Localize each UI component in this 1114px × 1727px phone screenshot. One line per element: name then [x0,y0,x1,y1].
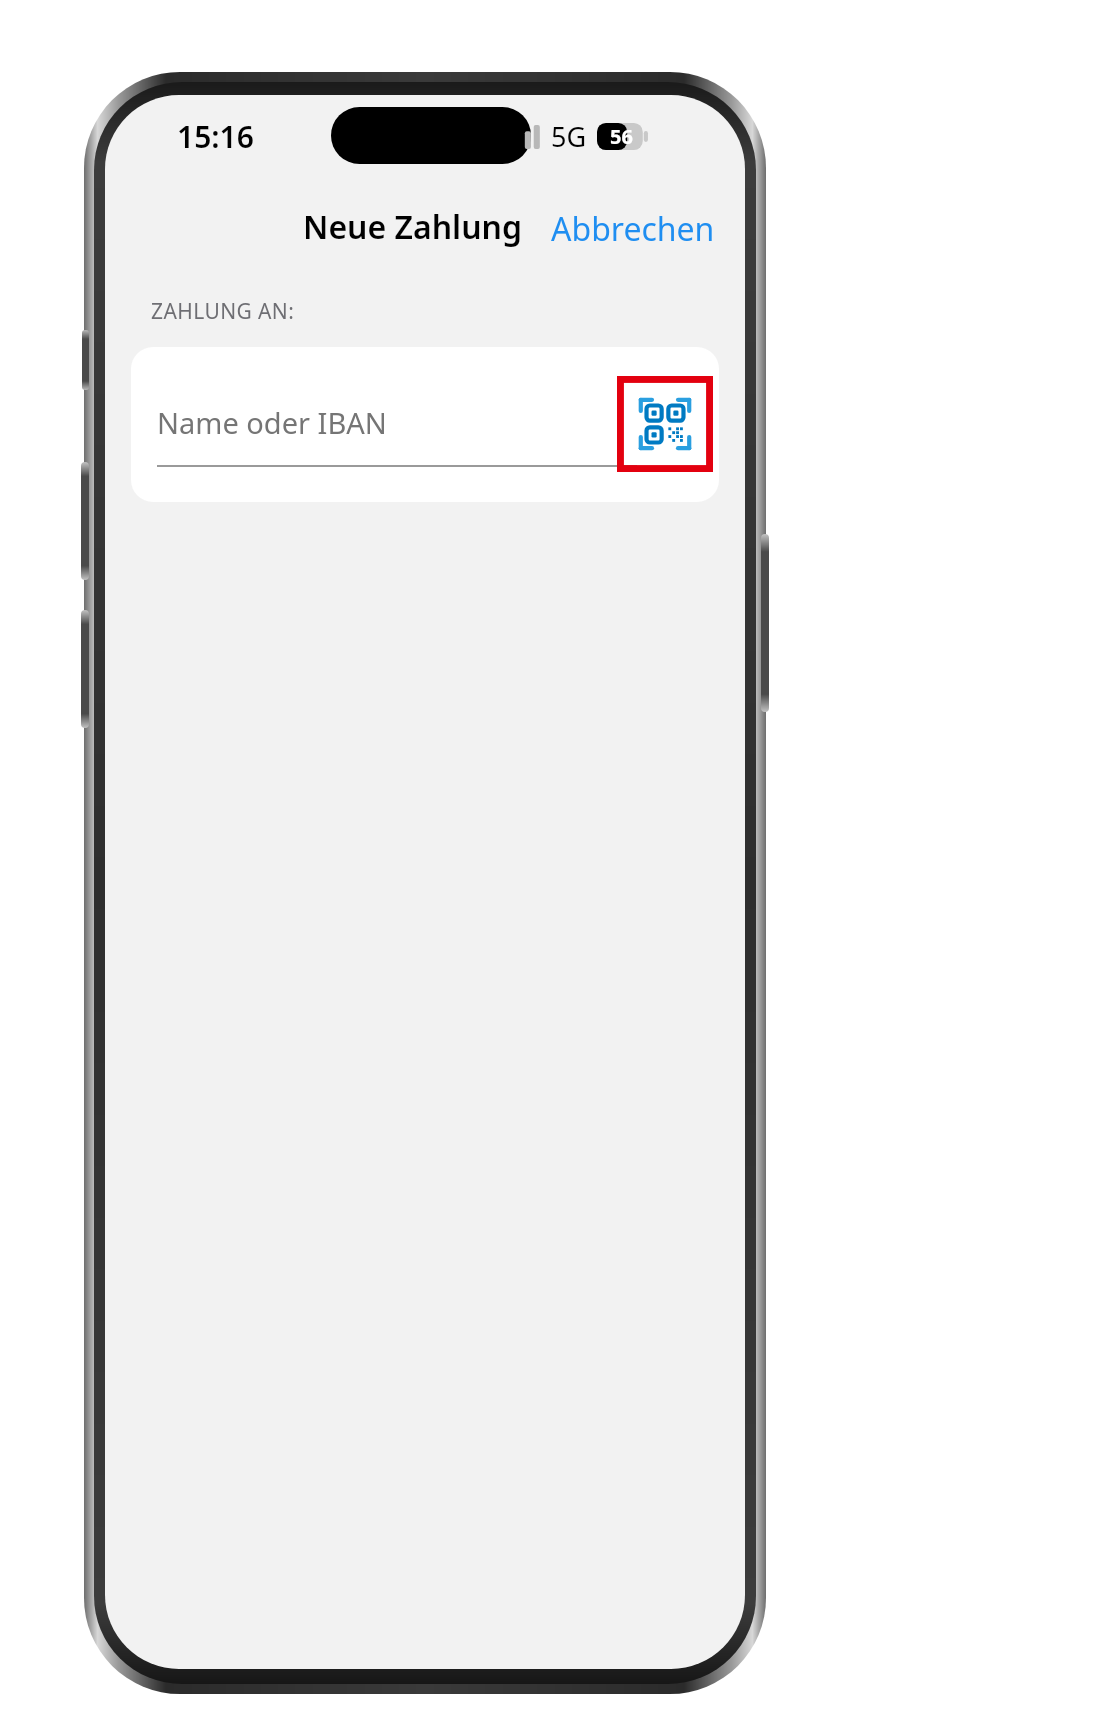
staticText: 56 [610,123,633,150]
staticText: Neue Zahlung [303,205,523,249]
staticText: 15:16 [177,116,254,157]
button[interactable]: Abbrechen [549,201,745,253]
staticText: Abbrechen [551,207,715,247]
button[interactable]: QR-Code scannen [617,376,713,472]
staticText: Name oder IBAN [157,403,387,442]
button[interactable]: Name oder IBAN [157,403,657,442]
staticText: ZAHLUNG AN: [151,297,295,326]
staticText: 5G [551,118,587,155]
